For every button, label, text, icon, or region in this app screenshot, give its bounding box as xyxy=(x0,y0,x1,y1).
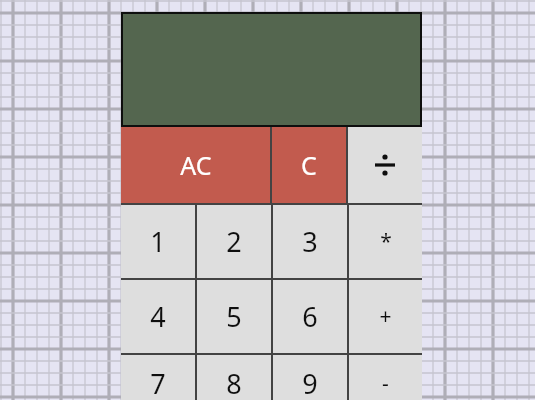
button[interactable]: - xyxy=(349,355,422,400)
staticText: 4 xyxy=(150,298,166,335)
button[interactable]: 6 xyxy=(273,280,347,353)
button[interactable]: C xyxy=(272,127,346,203)
staticText: 9 xyxy=(302,365,318,400)
staticText: 2 xyxy=(226,223,242,260)
staticText: 1 xyxy=(150,223,166,260)
staticText: * xyxy=(380,227,392,256)
button[interactable]: + xyxy=(349,280,422,353)
button[interactable]: 1 xyxy=(121,205,195,278)
staticText: AC xyxy=(180,148,212,182)
staticText: 3 xyxy=(302,223,318,260)
button[interactable]: AC xyxy=(121,127,270,203)
staticText: 8 xyxy=(226,365,242,400)
staticText: 6 xyxy=(302,298,318,335)
button[interactable]: 8 xyxy=(197,355,271,400)
staticText: 7 xyxy=(150,365,166,400)
staticText: - xyxy=(382,369,389,398)
staticText: 5 xyxy=(226,298,242,335)
staticText: C xyxy=(301,148,317,182)
button[interactable]: 9 xyxy=(273,355,347,400)
button[interactable]: 7 xyxy=(121,355,195,400)
button[interactable]: * xyxy=(349,205,422,278)
button[interactable]: Divide xyxy=(348,127,422,203)
button[interactable]: 2 xyxy=(197,205,271,278)
button[interactable]: 3 xyxy=(273,205,347,278)
button[interactable]: 4 xyxy=(121,280,195,353)
staticText: + xyxy=(379,302,392,331)
button[interactable]: 5 xyxy=(197,280,271,353)
